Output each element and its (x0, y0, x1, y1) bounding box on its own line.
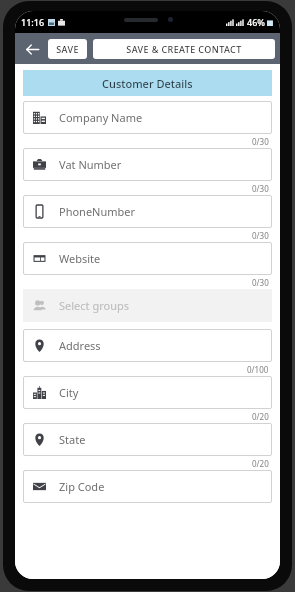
staticText: State (59, 432, 86, 447)
staticText: 0/30 (252, 230, 269, 241)
staticText: 0/30 (252, 277, 269, 288)
button[interactable]: Zip Code (23, 470, 272, 503)
button[interactable]: Back (20, 37, 44, 61)
staticText: Zip Code (59, 479, 105, 494)
button[interactable]: State (23, 423, 272, 456)
button[interactable]: Website (23, 242, 272, 275)
staticText: SAVE & CREATE CONTACT (126, 43, 242, 55)
staticText: PhoneNumber (59, 204, 136, 219)
button[interactable]: Company Name (23, 101, 272, 134)
button[interactable]: City (23, 376, 272, 409)
staticText: Customer Details (102, 76, 193, 91)
staticText: 0/30 (252, 183, 269, 194)
staticText: 0/20 (252, 458, 269, 469)
button[interactable]: Select groups (23, 289, 272, 322)
button[interactable]: Vat Number (23, 148, 272, 181)
staticText: Website (59, 251, 101, 266)
staticText: 0/30 (252, 136, 269, 147)
staticText: SAVE (56, 43, 79, 55)
button[interactable]: Address (23, 329, 272, 362)
staticText: 0/100 (247, 364, 269, 375)
staticText: 46% (247, 16, 265, 28)
button[interactable]: SAVE (48, 39, 87, 59)
button[interactable]: SAVE & CREATE CONTACT (93, 39, 275, 59)
staticText: City (59, 385, 79, 400)
button[interactable]: PhoneNumber (23, 195, 272, 228)
staticText: Select groups (59, 298, 129, 313)
staticText: Address (59, 338, 101, 353)
staticText: 0/20 (252, 411, 269, 422)
staticText: Company Name (59, 110, 143, 125)
staticText: 11:16 (21, 16, 45, 28)
staticText: Vat Number (59, 157, 122, 172)
